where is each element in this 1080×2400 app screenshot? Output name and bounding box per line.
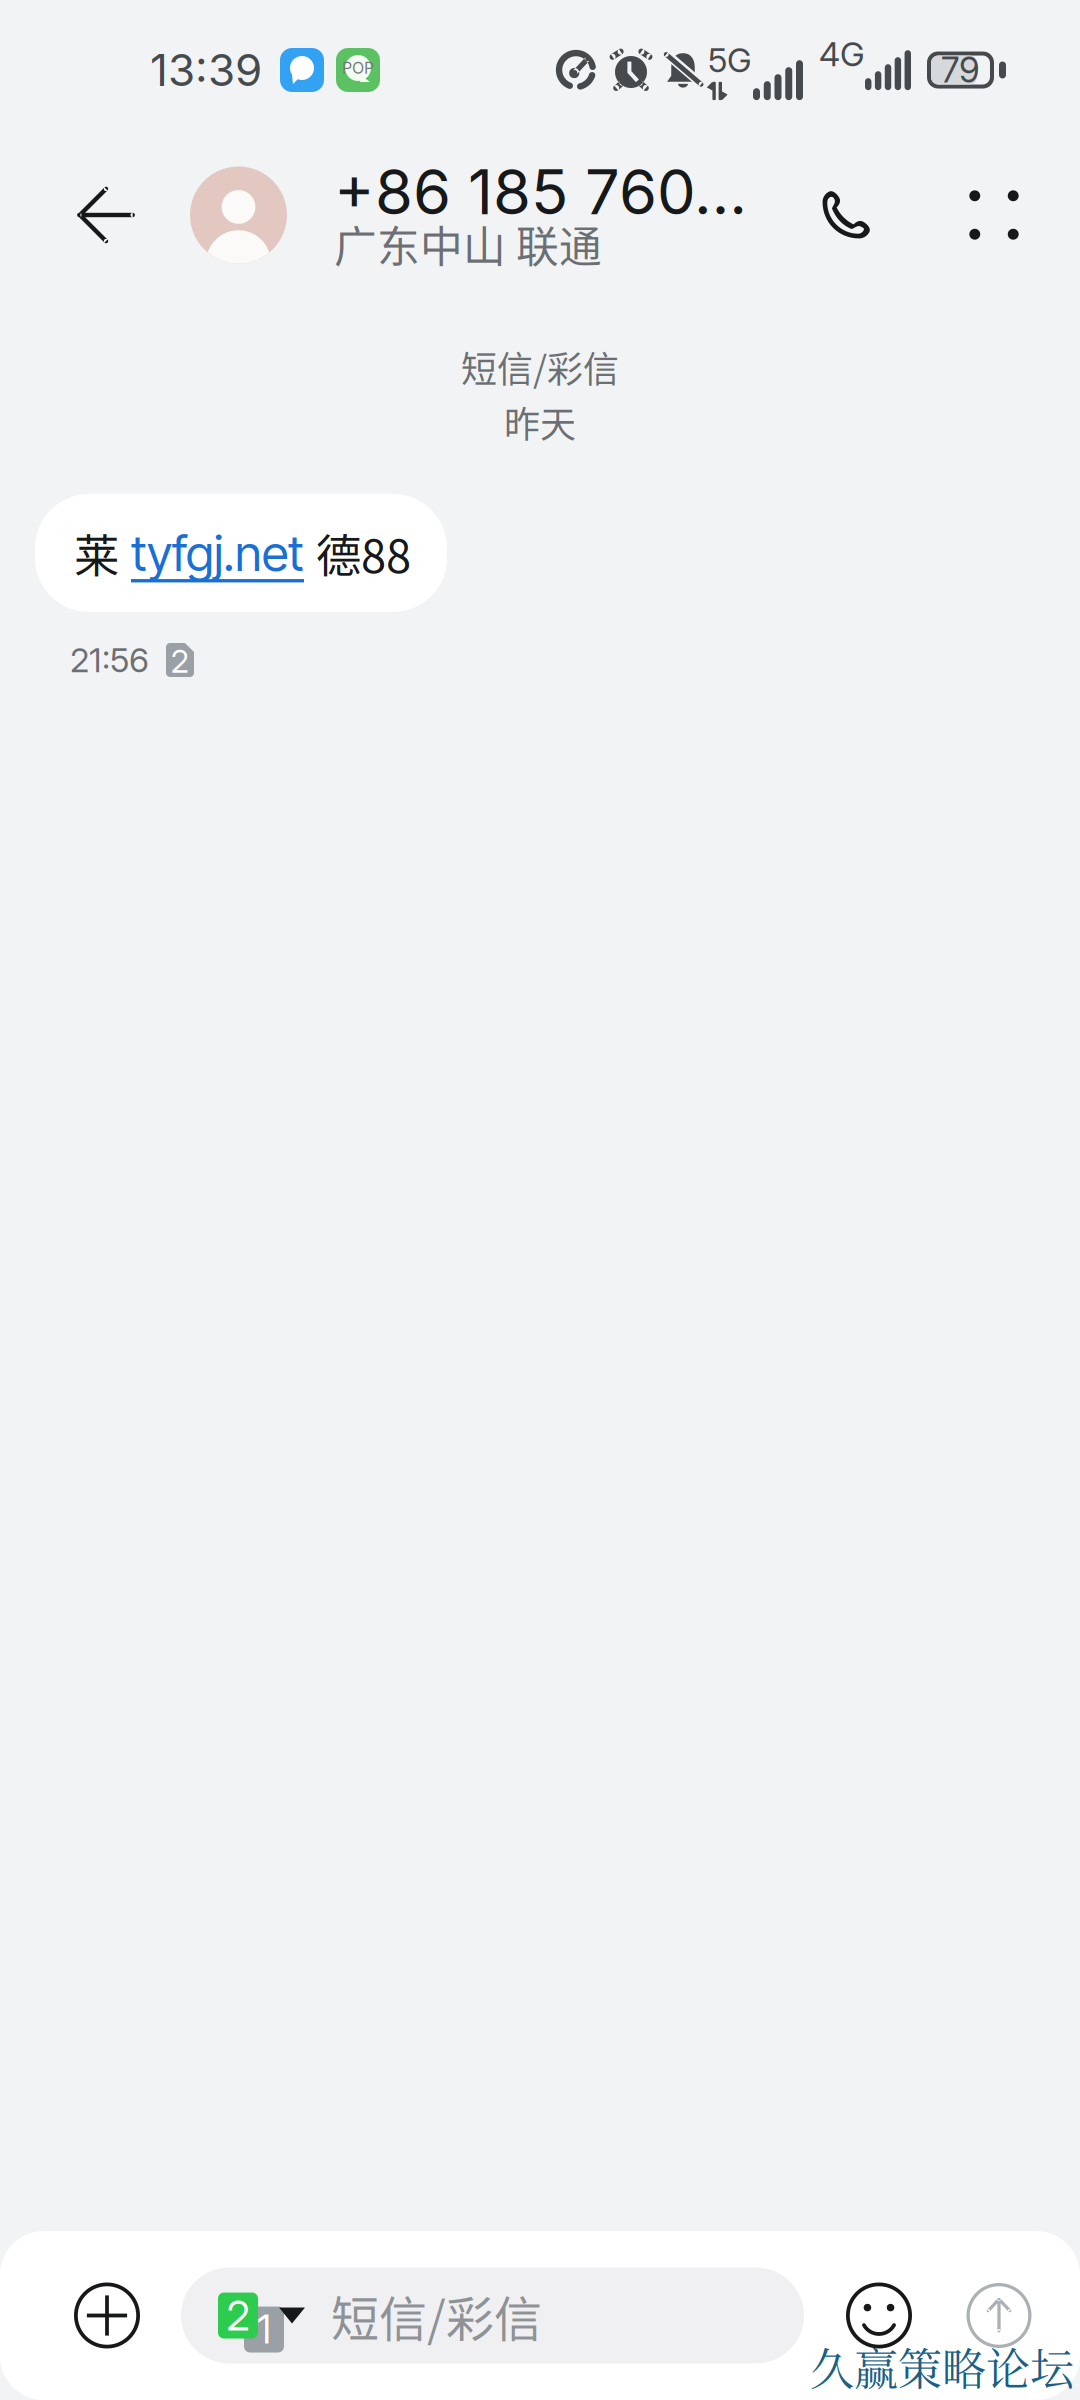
staticText: 13:39	[150, 43, 262, 97]
staticText: 短信/彩信	[461, 341, 619, 393]
button[interactable]: +86 185 760…	[190, 150, 747, 280]
staticText: POP	[342, 58, 374, 78]
button[interactable]: Send	[952, 2260, 1046, 2370]
staticText: 4G	[819, 34, 865, 74]
staticText: 5G	[708, 40, 752, 80]
staticText: +86 185 760…	[334, 155, 747, 229]
button[interactable]: Call	[787, 150, 905, 280]
staticText: 短信/彩信	[331, 2281, 542, 2350]
button[interactable]: 莱	[35, 494, 447, 612]
staticText: 莱	[74, 520, 119, 586]
staticText: 昨天	[504, 396, 576, 448]
staticText: 1	[257, 2306, 271, 2353]
staticText: 2	[226, 2290, 249, 2340]
button[interactable]: 1	[181, 2267, 804, 2363]
staticText: 21:56	[70, 640, 149, 680]
staticText: tyfgj.net	[131, 523, 304, 583]
button[interactable]: Add attachment	[55, 2260, 159, 2370]
staticText: 德88	[316, 520, 411, 586]
staticText: 79	[941, 49, 980, 91]
staticText: 广东中山 联通	[334, 213, 602, 275]
button[interactable]: More options	[939, 150, 1049, 280]
staticText: 2	[170, 642, 189, 680]
button[interactable]: Emoji	[832, 2260, 926, 2370]
staticText: 久赢策略论坛	[810, 2335, 1074, 2398]
button[interactable]: Back	[50, 150, 162, 280]
